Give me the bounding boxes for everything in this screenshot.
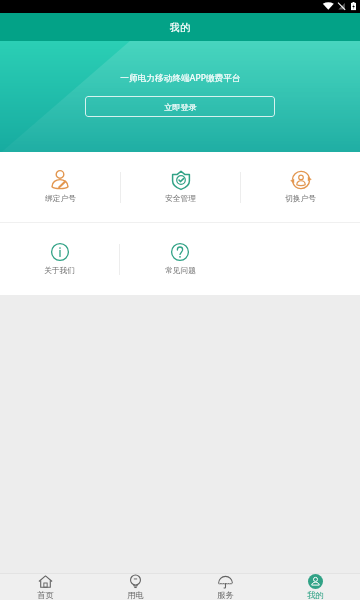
staticText: 立即登录 [164,102,197,112]
button[interactable]: 服务 [180,574,270,600]
staticText: 我的 [170,21,190,34]
staticText: 关于我们 [44,266,75,276]
staticText: 服务 [217,590,234,600]
staticText: 用电 [127,590,144,600]
staticText: 绑定户号 [45,194,76,204]
staticText: 切换户号 [285,194,316,204]
button[interactable]: 首页 [0,574,90,600]
button[interactable]: 立即登录 [85,96,275,117]
button[interactable]: 关于我们 [0,223,119,295]
button[interactable]: 安全管理 [121,152,240,222]
button[interactable]: 常见问题 [120,223,240,295]
staticText: 常见问题 [165,266,196,276]
staticText: 安全管理 [165,194,196,204]
button[interactable]: 绑定户号 [0,152,120,222]
button[interactable]: 用电 [90,574,180,600]
staticText: 一师电力移动终端APP缴费平台 [120,72,241,84]
staticText: 我的 [307,590,324,600]
button[interactable]: 我的 [270,574,360,600]
button[interactable]: 切换户号 [241,152,360,222]
staticText: 首页 [37,590,54,600]
